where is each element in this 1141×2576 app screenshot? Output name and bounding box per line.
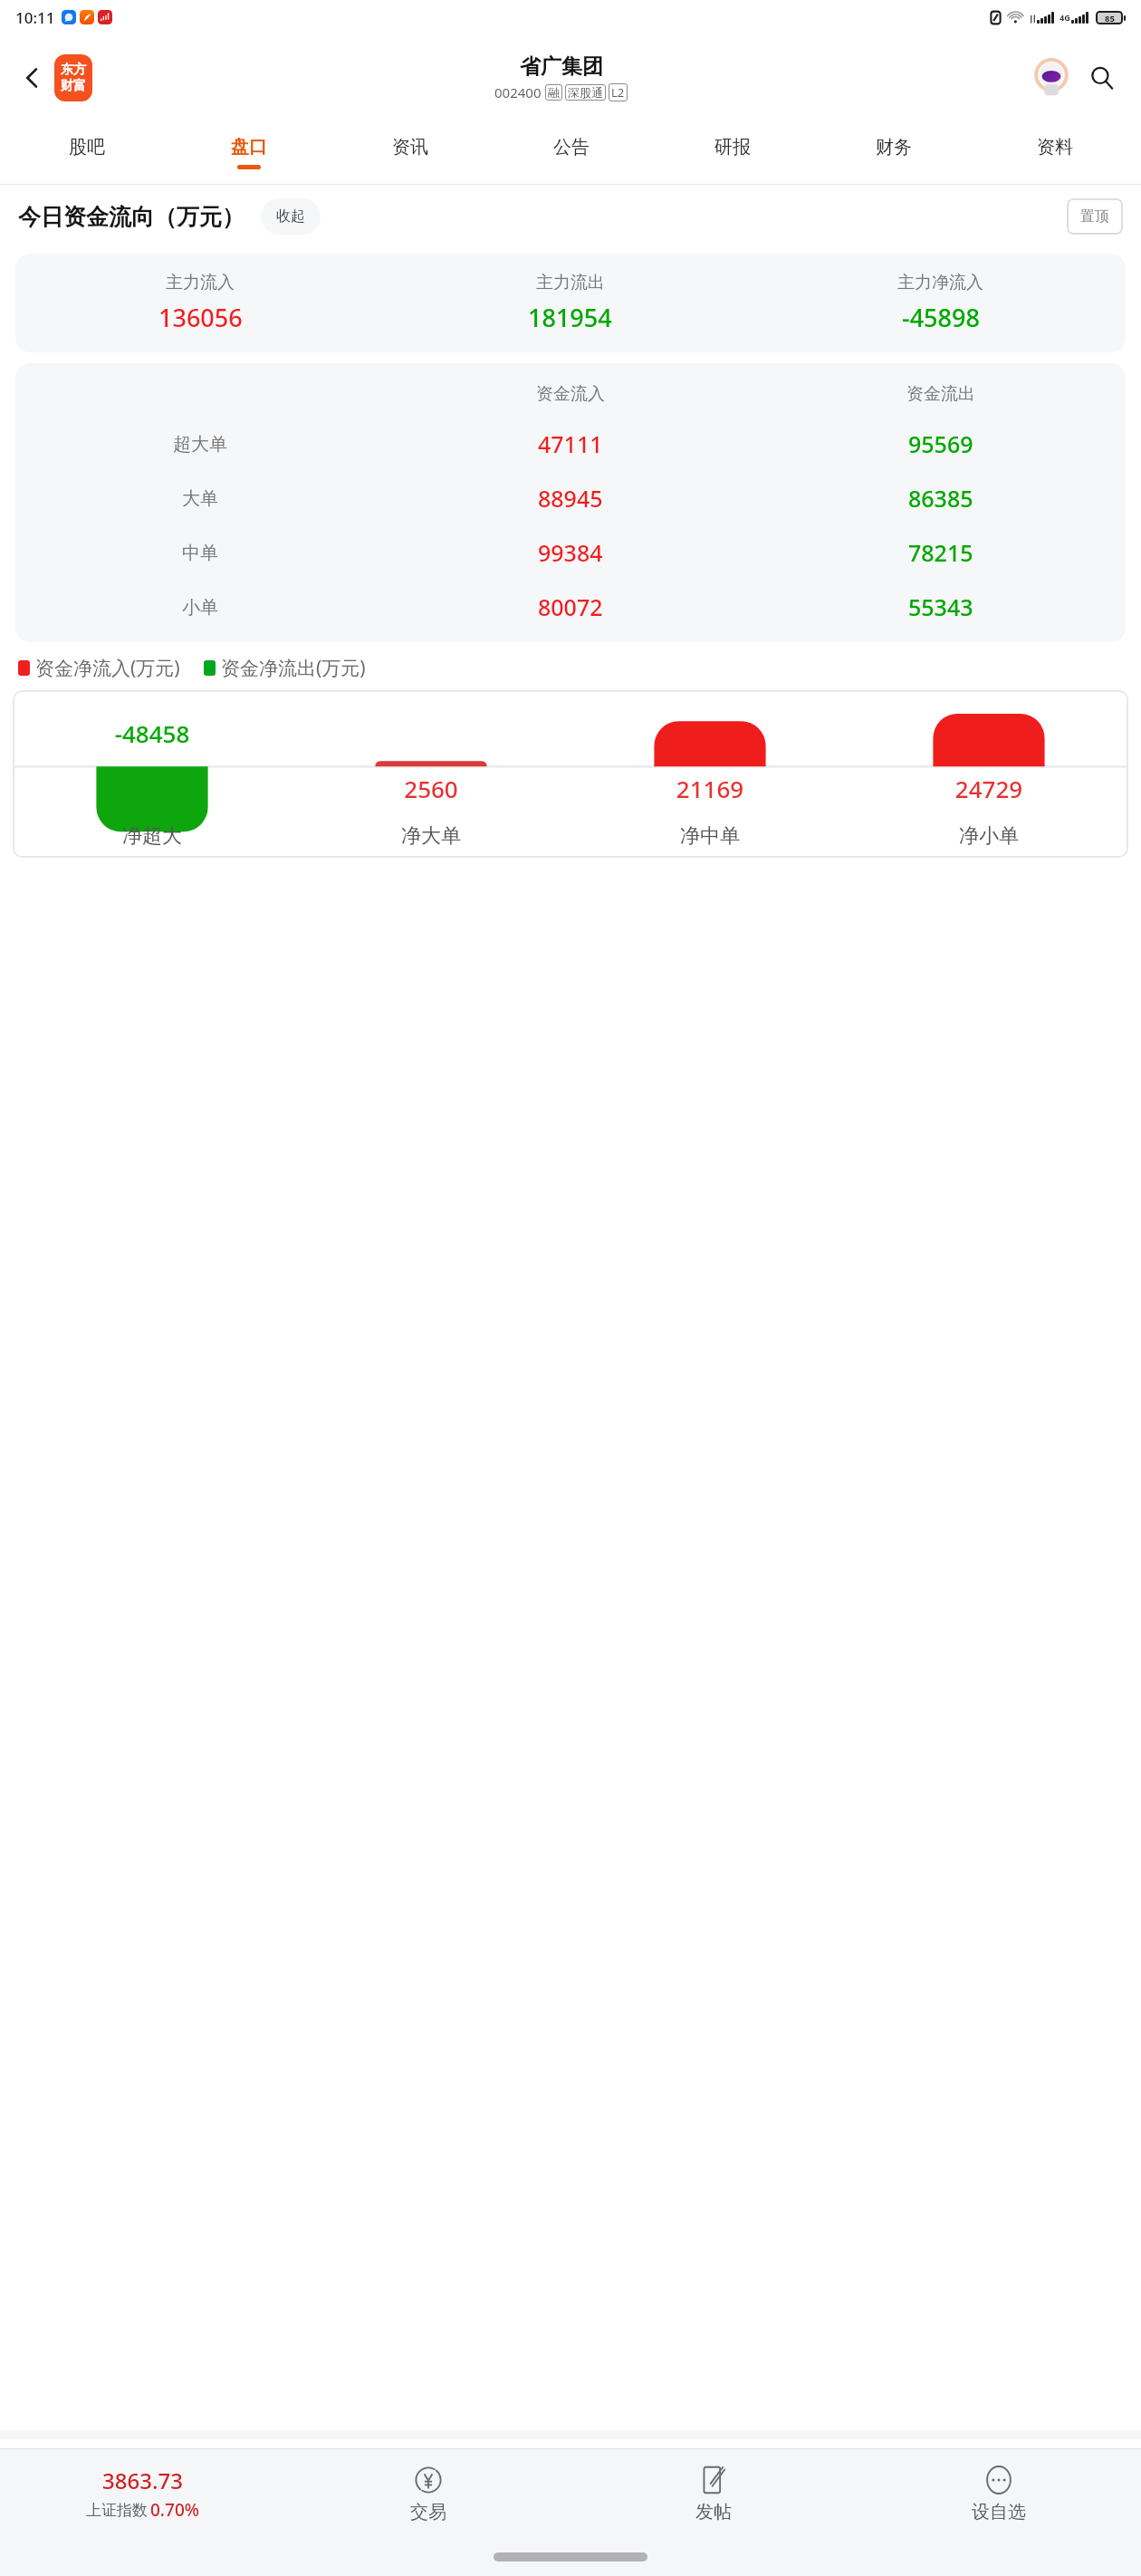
staticText: 47111 <box>538 428 603 459</box>
button[interactable]: 盘口 <box>168 120 330 184</box>
button[interactable]: Assistant <box>1031 57 1072 99</box>
button[interactable]: 收起 <box>261 198 321 235</box>
staticText: 4G <box>1059 12 1070 23</box>
button[interactable]: 3863.73 <box>0 2449 285 2538</box>
staticText: 资金流入 <box>536 383 605 405</box>
staticText: 55343 <box>908 591 973 622</box>
staticText: 股吧 <box>69 136 105 159</box>
staticText: L2 <box>611 84 625 101</box>
button[interactable]: East Money <box>54 54 92 101</box>
staticText: 主力净流入 <box>897 272 983 293</box>
staticText: 交易 <box>410 2501 446 2523</box>
staticText: 财富 <box>61 78 86 94</box>
staticText: 上证指数 <box>86 2501 148 2520</box>
staticText: 136056 <box>158 301 243 334</box>
staticText: 资讯 <box>392 136 428 159</box>
button[interactable]: -48458 <box>13 690 1128 858</box>
staticText: 研报 <box>714 136 751 159</box>
button[interactable]: 设自选 <box>856 2449 1141 2538</box>
staticText: 3863.73 <box>102 2465 183 2495</box>
button[interactable]: 主力流入 <box>15 254 1126 352</box>
staticText: 财务 <box>876 136 912 159</box>
staticText: 超大单 <box>173 433 227 456</box>
staticText: 资金净流出(万元) <box>221 655 366 681</box>
button[interactable]: 资金流入 <box>15 363 1126 642</box>
staticText: 78215 <box>908 537 973 568</box>
staticText: 公告 <box>553 136 590 159</box>
staticText: 今日资金流向（万元） <box>18 203 244 231</box>
button[interactable]: 交易 <box>285 2449 570 2538</box>
button[interactable]: 财务 <box>813 120 974 184</box>
staticText: 资金流出 <box>906 383 975 405</box>
button[interactable]: 资讯 <box>330 120 491 184</box>
staticText: 东方 <box>61 62 86 78</box>
staticText: 置顶 <box>1080 207 1109 226</box>
staticText: 发帖 <box>695 2501 732 2523</box>
staticText: 0.70% <box>150 2498 199 2522</box>
staticText: 24729 <box>849 773 1128 804</box>
staticText: 净超大 <box>122 823 182 849</box>
staticText: -45898 <box>902 301 980 334</box>
staticText: 2560 <box>292 773 570 804</box>
button[interactable]: 研报 <box>652 120 813 184</box>
staticText: 资金净流入(万元) <box>35 655 180 681</box>
button[interactable]: Search <box>1081 57 1123 99</box>
staticText: 净大单 <box>401 823 461 849</box>
staticText: 收起 <box>276 207 305 226</box>
staticText: 净中单 <box>680 823 740 849</box>
staticText: 设自选 <box>972 2501 1026 2523</box>
staticText: 95569 <box>908 428 973 459</box>
staticText: 深股通 <box>568 85 603 100</box>
staticText: 99384 <box>538 537 603 568</box>
staticText: -48458 <box>13 717 292 749</box>
staticText: 002400 <box>494 83 542 101</box>
staticText: 86385 <box>908 483 973 514</box>
staticText: 小单 <box>182 596 218 619</box>
staticText: 盘口 <box>231 136 267 159</box>
staticText: 10:11 <box>15 7 55 28</box>
staticText: 资料 <box>1037 136 1073 159</box>
staticText: 181954 <box>528 301 612 334</box>
button[interactable]: 资料 <box>974 120 1136 184</box>
button[interactable]: 置顶 <box>1067 198 1123 235</box>
button[interactable]: 发帖 <box>570 2449 856 2538</box>
staticText: 大单 <box>182 487 218 510</box>
staticText: 省广集团 <box>520 53 603 80</box>
staticText: 21169 <box>570 773 849 804</box>
button[interactable]: 公告 <box>491 120 652 184</box>
staticText: 85 <box>1105 13 1115 23</box>
staticText: 中单 <box>182 542 218 564</box>
button[interactable]: Back <box>13 58 53 98</box>
staticText: 融 <box>548 85 560 100</box>
staticText: 净小单 <box>959 823 1019 849</box>
button[interactable]: 股吧 <box>5 120 168 184</box>
staticText: 88945 <box>538 483 603 514</box>
staticText: 主力流入 <box>166 272 235 293</box>
staticText: 主力流出 <box>536 272 605 293</box>
staticText: 80072 <box>538 591 603 622</box>
